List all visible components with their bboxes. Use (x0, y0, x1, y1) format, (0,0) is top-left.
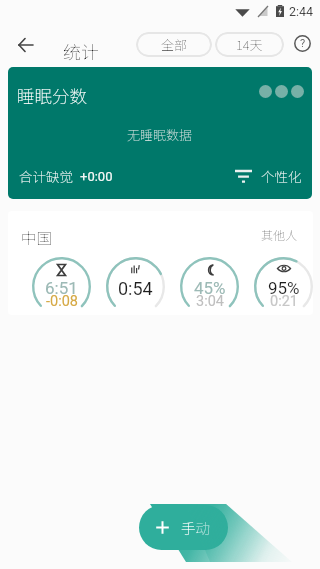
staticText: -0:08 (46, 293, 78, 310)
button[interactable]: 14天 (215, 32, 284, 57)
staticText: 全部 (161, 35, 188, 54)
staticText: 45% (194, 278, 226, 298)
staticText: 合计缺觉 (19, 166, 73, 186)
staticText: 其他人 (261, 226, 298, 243)
staticText: 手动 (181, 517, 210, 538)
button[interactable]: 中国 (8, 211, 313, 315)
button[interactable]: 睡眠分数 (8, 67, 312, 199)
staticText: 睡眠分数 (17, 83, 87, 108)
staticText: ? (300, 37, 306, 50)
button[interactable]: 个性化 (235, 166, 302, 186)
staticText: 6:51 (45, 278, 78, 298)
button[interactable]: 手动 (139, 505, 228, 550)
staticText: +0:00 (80, 169, 113, 184)
staticText: 95% (268, 278, 300, 298)
staticText: 2:44 (289, 4, 314, 19)
button[interactable]: 全部 (136, 32, 212, 57)
staticText: 中国 (21, 226, 53, 248)
staticText: 3:04 (196, 293, 224, 310)
staticText: 14天 (236, 35, 263, 54)
button[interactable]: Help (290, 31, 315, 56)
staticText: 个性化 (261, 166, 302, 186)
staticText: 0:54 (118, 278, 153, 299)
staticText: 无睡眠数据 (127, 125, 193, 144)
staticText: 0:21 (270, 293, 298, 310)
button[interactable]: Back (9, 29, 41, 61)
button[interactable]: More options (258, 85, 305, 98)
staticText: 统计 (63, 38, 99, 64)
